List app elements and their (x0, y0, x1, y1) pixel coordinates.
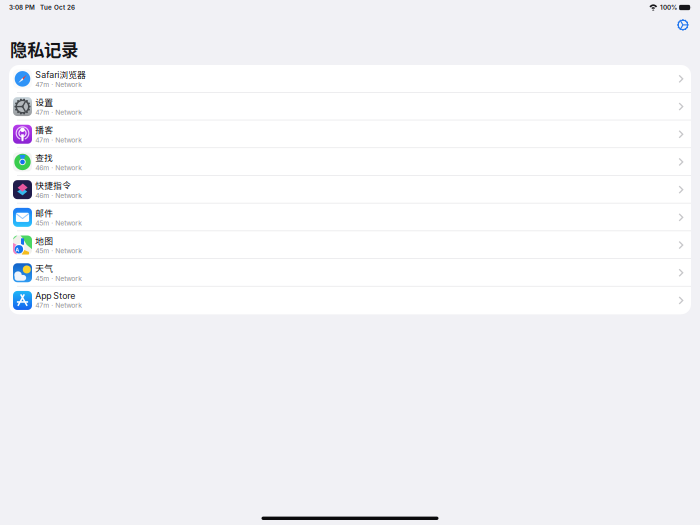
staticText: App Store (35, 290, 75, 301)
staticText: A (16, 245, 20, 253)
staticText: 45m · Network (35, 247, 82, 255)
staticText: 隐私记录 (10, 36, 78, 61)
staticText: 邮件 (35, 206, 53, 219)
staticText: 47m · Network (35, 301, 82, 309)
staticText: 46m · Network (35, 164, 82, 172)
staticText: 播客 (35, 123, 53, 136)
button[interactable]: App Store (9, 287, 691, 314)
staticText: 46m · Network (35, 191, 82, 199)
staticText: 47m · Network (35, 136, 82, 144)
button[interactable]: Safari浏览器 (9, 65, 691, 93)
staticText: 45m · Network (35, 274, 82, 283)
staticText: 地图 (35, 234, 53, 247)
staticText: 快捷指令 (35, 179, 71, 191)
staticText: 3:08 PM (9, 4, 35, 11)
staticText: 设置 (35, 95, 53, 108)
staticText: Safari浏览器 (35, 68, 86, 80)
button[interactable]: 查找 (9, 148, 691, 176)
button[interactable]: 设置 (9, 93, 691, 120)
staticText: 45m · Network (35, 219, 82, 227)
staticText: 100% (660, 4, 677, 11)
button[interactable]: Privacy report settings (676, 18, 689, 31)
button[interactable]: 快捷指令 (9, 176, 691, 203)
staticText: 47m · Network (35, 80, 82, 89)
button[interactable]: 播客 (9, 120, 691, 148)
button[interactable]: A (9, 231, 691, 259)
staticText: 查找 (35, 151, 53, 164)
button[interactable]: 邮件 (9, 203, 691, 231)
staticText: 天气 (35, 262, 53, 274)
staticText: Tue Oct 26 (40, 4, 75, 11)
button[interactable]: 天气 (9, 259, 691, 287)
staticText: 47m · Network (35, 108, 82, 116)
